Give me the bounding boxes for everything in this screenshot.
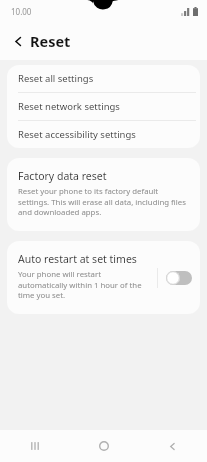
staticText: Auto restart at set times (18, 252, 137, 266)
button[interactable]: Factory data reset (7, 158, 200, 231)
button[interactable]: Auto restart toggle (166, 271, 192, 285)
staticText: Reset accessibility settings (18, 128, 136, 141)
button[interactable]: Back (9, 32, 27, 50)
button[interactable]: Reset all settings (7, 65, 200, 92)
staticText: 10.00 (11, 6, 32, 17)
button[interactable]: Recents (0, 430, 69, 462)
staticText: Reset network settings (18, 100, 120, 113)
staticText: Reset (30, 31, 71, 51)
staticText: Factory data reset (18, 169, 107, 183)
staticText: Reset your phone to its factory default … (18, 186, 188, 218)
button[interactable]: Auto restart at set times (7, 241, 200, 314)
button[interactable]: Back (138, 430, 207, 462)
button[interactable]: Reset accessibility settings (7, 121, 200, 148)
staticText: Your phone will restart automatically wi… (18, 269, 151, 301)
staticText: Reset all settings (18, 72, 94, 85)
button[interactable]: Reset network settings (7, 93, 200, 120)
button[interactable]: Home (69, 430, 138, 462)
